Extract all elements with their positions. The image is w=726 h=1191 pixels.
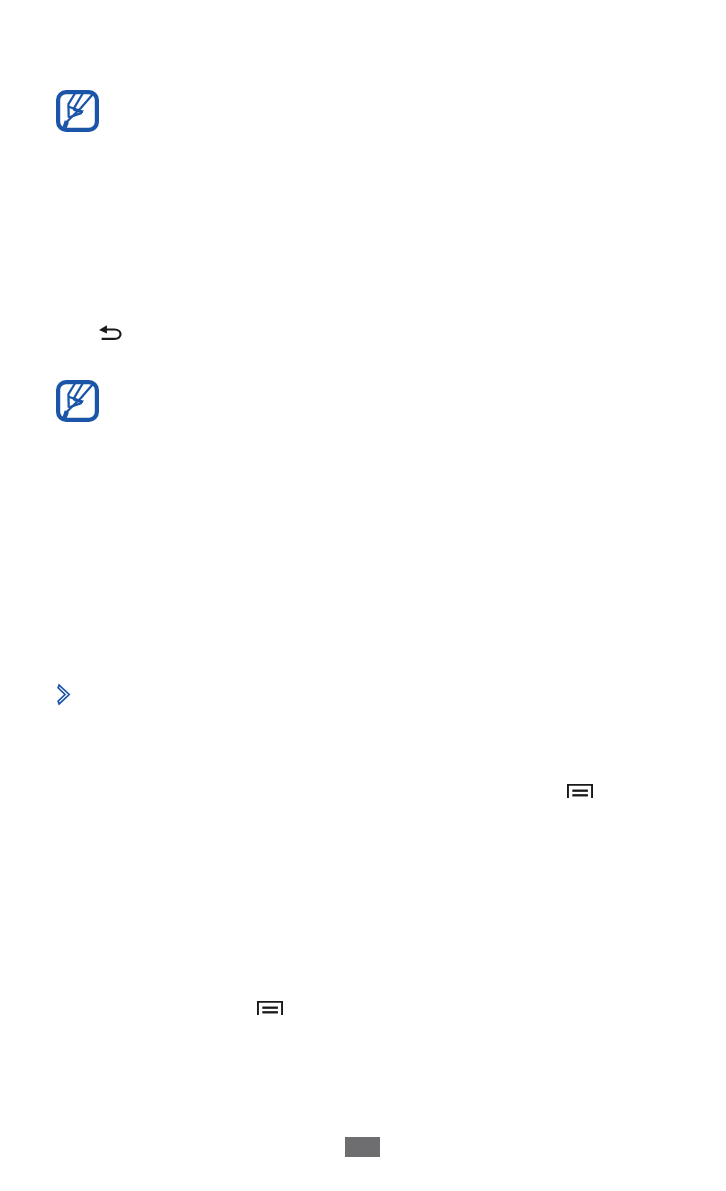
button[interactable]: Memo app (56, 380, 99, 422)
button[interactable]: Next step (57, 684, 70, 705)
button[interactable]: Back (99, 325, 121, 340)
button[interactable]: Options menu (257, 1001, 283, 1015)
button[interactable]: Memo app (56, 90, 99, 132)
button[interactable]: Options menu (567, 784, 593, 798)
